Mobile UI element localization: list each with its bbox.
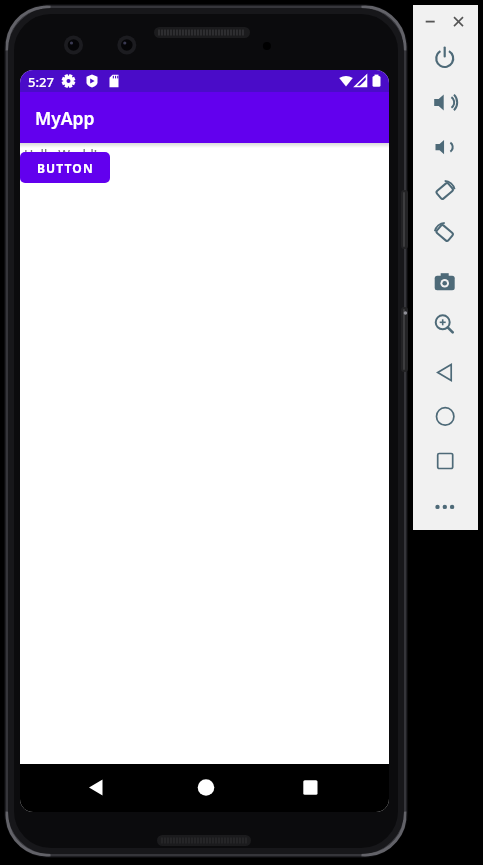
staticText: MyApp (35, 106, 95, 130)
button[interactable] (430, 309, 460, 339)
button[interactable] (450, 13, 467, 30)
button[interactable] (430, 132, 460, 162)
button[interactable] (430, 175, 460, 205)
button[interactable] (430, 446, 460, 476)
button[interactable]: BUTTON (20, 152, 110, 183)
button[interactable] (430, 358, 460, 388)
button[interactable] (422, 13, 439, 30)
button[interactable] (95, 768, 135, 808)
button[interactable] (430, 87, 460, 117)
button[interactable] (205, 768, 245, 808)
button[interactable] (430, 401, 460, 431)
button[interactable] (310, 768, 350, 808)
button[interactable] (430, 217, 460, 247)
staticText: BUTTON (37, 160, 94, 176)
button[interactable] (430, 43, 460, 73)
staticText: Hello World! (24, 146, 98, 163)
button[interactable] (430, 492, 460, 522)
button[interactable] (430, 267, 460, 297)
staticText: 5:27 (28, 73, 54, 91)
